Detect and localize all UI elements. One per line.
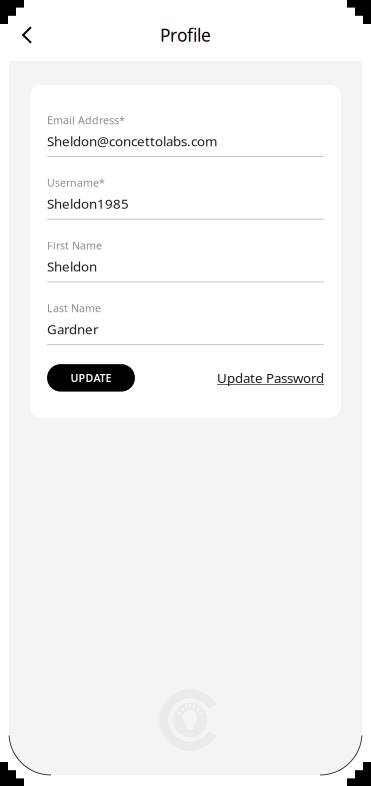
staticText: First Name	[47, 238, 102, 252]
staticText: Username*	[47, 176, 105, 190]
staticText: Sheldon@concettolabs.com	[47, 132, 217, 150]
staticText: Update Password	[217, 369, 324, 387]
staticText: Sheldon1985	[47, 195, 129, 212]
staticText: Email Address*	[47, 113, 125, 127]
staticText: Profile	[160, 23, 211, 46]
button[interactable]: UPDATE	[47, 364, 135, 392]
staticText: UPDATE	[70, 371, 111, 385]
staticText: Sheldon	[47, 257, 97, 275]
button[interactable]: Update Password	[217, 364, 324, 392]
staticText: Last Name	[47, 301, 101, 315]
button[interactable]: Back	[10, 18, 44, 52]
staticText: Gardner	[47, 320, 99, 338]
